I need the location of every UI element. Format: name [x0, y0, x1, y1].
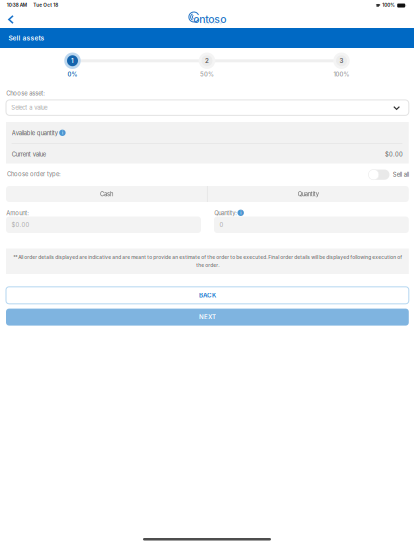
staticText: 100%: [333, 71, 349, 78]
staticText: Current value: [12, 151, 46, 158]
staticText: C R Y P T O: [204, 22, 221, 25]
staticText: 2: [205, 57, 209, 64]
staticText: 3: [339, 57, 343, 64]
staticText: Choose order type:: [7, 171, 61, 178]
staticText: 1: [71, 57, 74, 64]
staticText: i: [240, 210, 241, 216]
staticText: Sell assets: [8, 34, 44, 42]
staticText: Quantity: [298, 190, 319, 198]
staticText: Amount:: [6, 210, 29, 217]
staticText: Available quantity: [12, 130, 58, 137]
button[interactable]: Select a value: [6, 100, 409, 115]
staticText: i: [62, 130, 63, 136]
staticText: BACK: [199, 292, 216, 299]
staticText: Quantity:: [214, 210, 237, 217]
staticText: $0.00: [12, 221, 30, 228]
button[interactable]: NEXT: [6, 309, 409, 326]
staticText: 0: [220, 221, 224, 228]
staticText: NEXT: [199, 313, 216, 321]
staticText: Cash: [100, 190, 113, 198]
staticText: ** All order details displayed are indic…: [13, 254, 402, 268]
staticText: 0%: [67, 71, 77, 78]
button[interactable]: Cash: [6, 186, 207, 202]
staticText: Tue Oct 18: [33, 2, 58, 8]
button[interactable]: Back: [0, 11, 22, 27]
staticText: 100%: [382, 2, 395, 8]
staticText: $0.00: [385, 151, 403, 158]
staticText: Select a value: [11, 104, 47, 111]
button[interactable]: BACK: [6, 287, 409, 304]
button[interactable]: Sell all: [368, 169, 409, 180]
staticText: 50%: [200, 71, 214, 78]
staticText: Sell all: [393, 171, 409, 178]
staticText: ontoso: [193, 13, 226, 26]
staticText: Choose asset:: [6, 90, 45, 97]
staticText: 10:38 AM: [7, 2, 27, 8]
button[interactable]: Quantity: [208, 186, 409, 202]
